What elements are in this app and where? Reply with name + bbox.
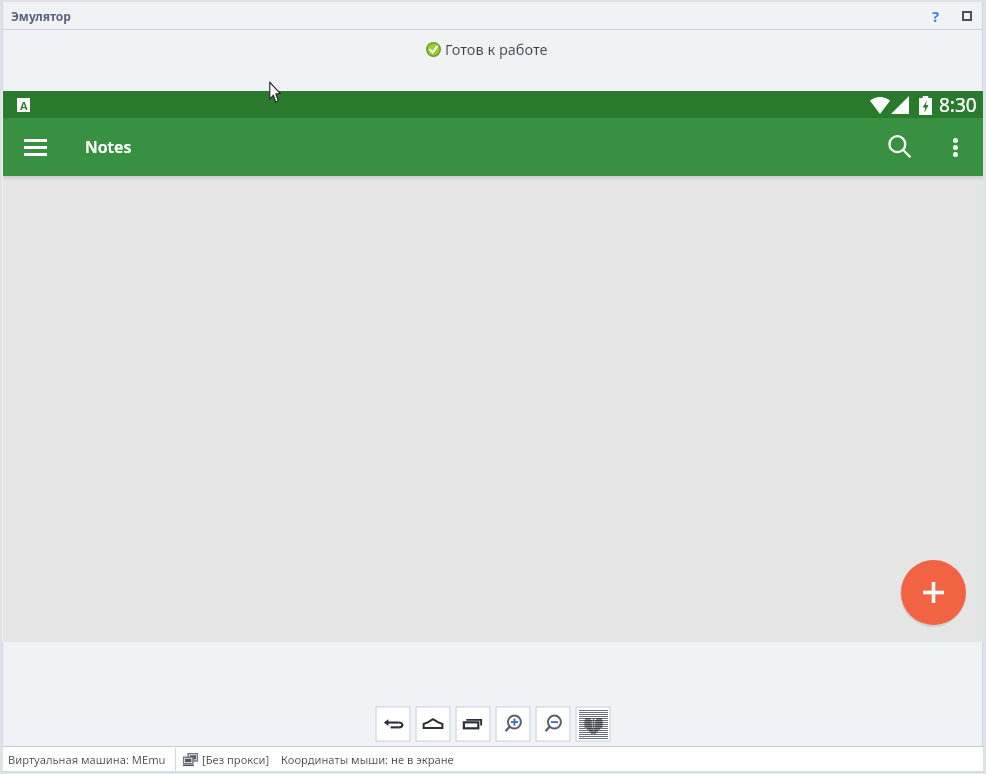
staticText: ? bbox=[932, 6, 940, 26]
button[interactable]: Add note bbox=[901, 560, 966, 625]
button[interactable]: Navigation menu bbox=[11, 123, 59, 171]
button[interactable]: Home bbox=[416, 707, 450, 741]
button[interactable]: More options bbox=[931, 123, 979, 171]
staticText: A bbox=[20, 98, 28, 112]
staticText: Эмулятор bbox=[11, 8, 71, 24]
button[interactable]: Search bbox=[876, 123, 924, 171]
button[interactable]: Shake bbox=[576, 707, 610, 741]
button[interactable]: Zoom out bbox=[536, 707, 570, 741]
staticText: Notes bbox=[85, 136, 132, 158]
staticText: Готов к работе bbox=[445, 39, 548, 59]
button[interactable]: Help bbox=[924, 4, 948, 28]
button[interactable]: Zoom in bbox=[496, 707, 530, 741]
staticText: Координаты мыши: не в экране bbox=[281, 752, 454, 767]
staticText: [Без прокси] bbox=[202, 752, 270, 767]
button[interactable]: Back bbox=[376, 707, 410, 741]
button[interactable]: Maximize bbox=[955, 4, 979, 28]
button[interactable]: Recent apps bbox=[456, 707, 490, 741]
staticText: 8:30 bbox=[939, 92, 977, 118]
staticText: Виртуальная машина: MEmu bbox=[8, 752, 166, 767]
